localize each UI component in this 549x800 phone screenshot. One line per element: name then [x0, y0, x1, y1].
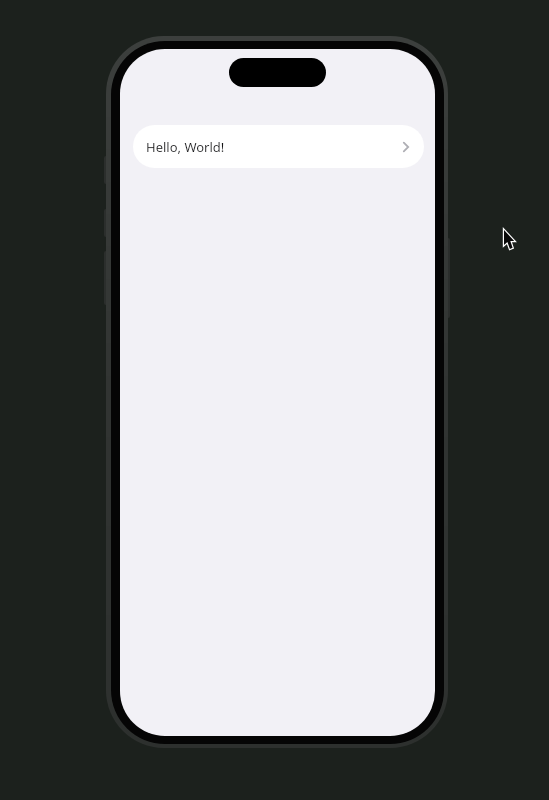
button[interactable]: Hello, World!: [133, 125, 424, 168]
staticText: Hello, World!: [146, 138, 225, 156]
